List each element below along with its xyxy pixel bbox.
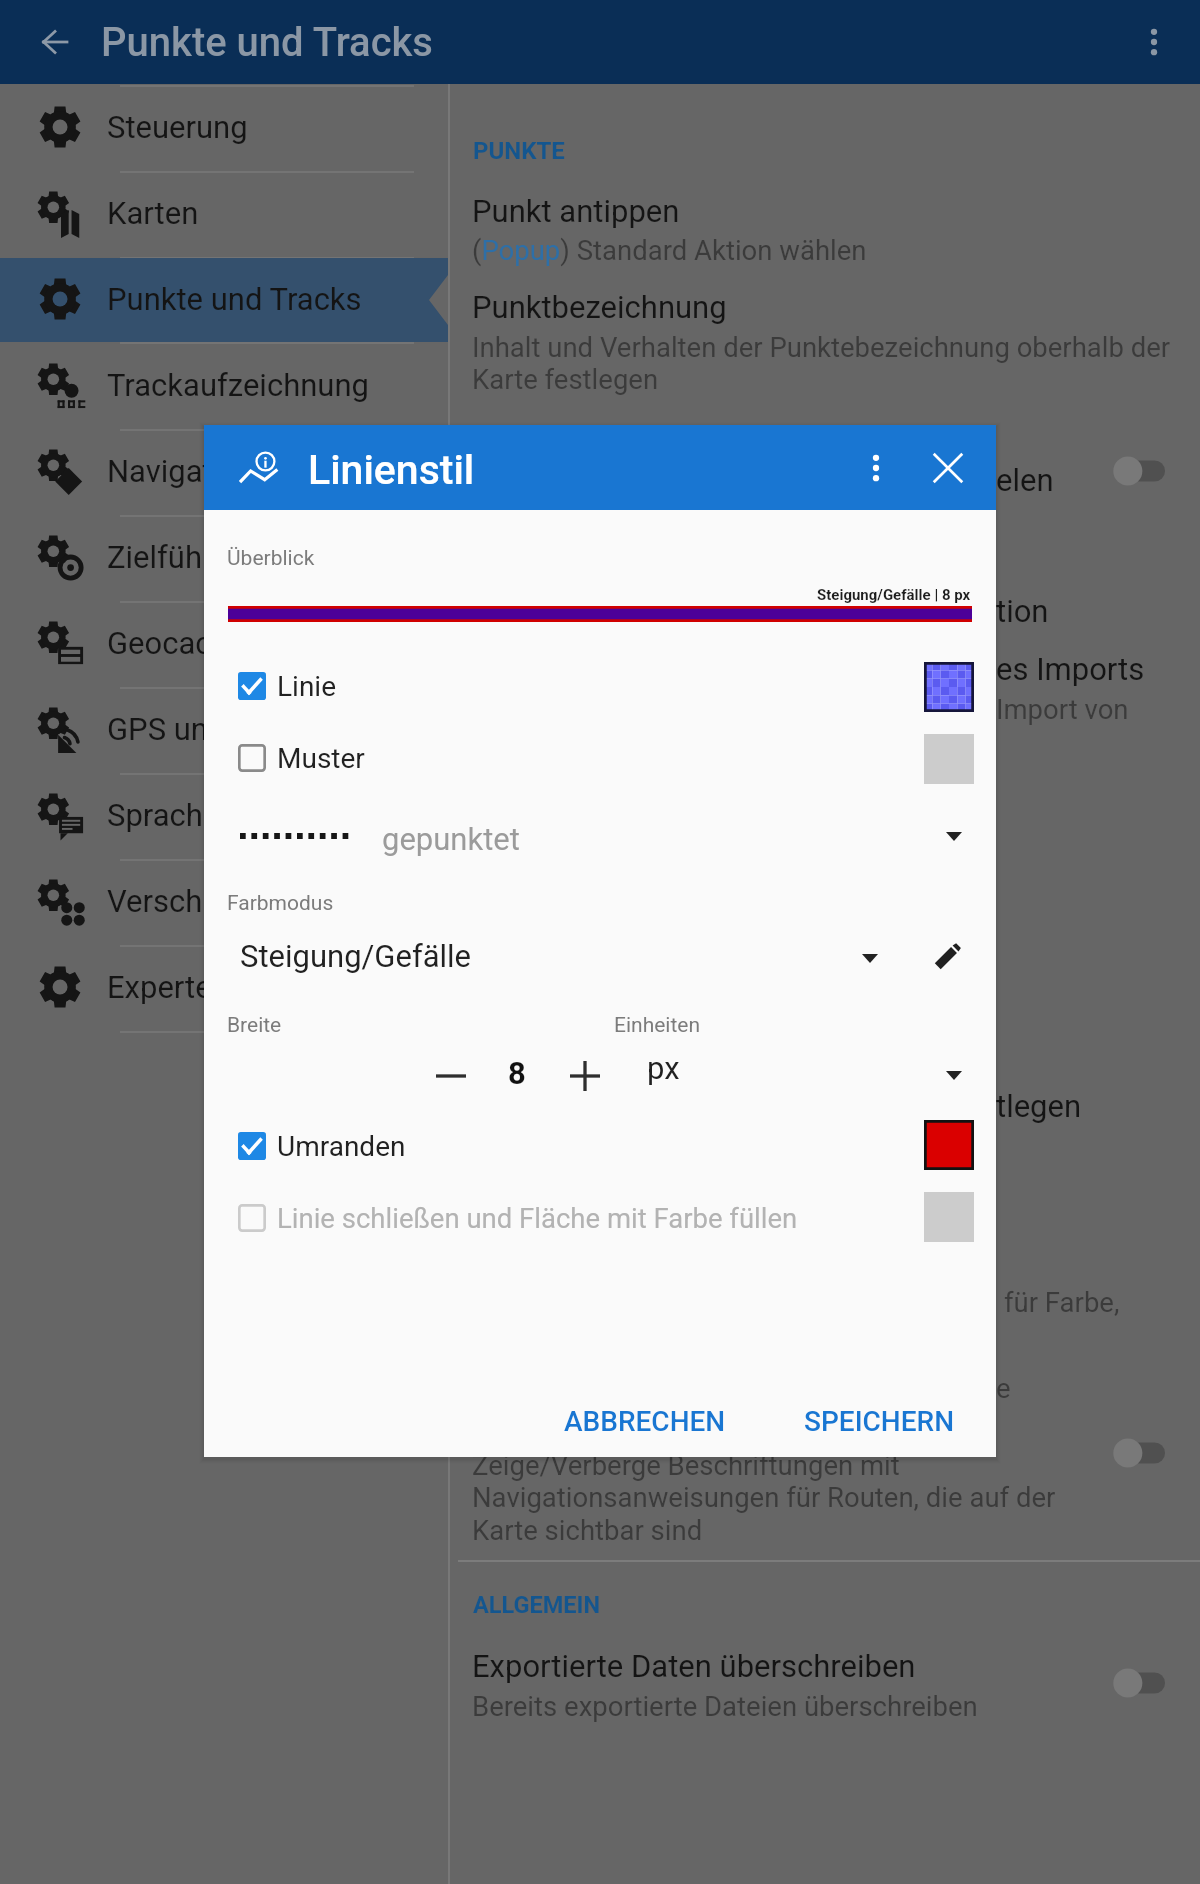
staticText: PUNKTE [473, 137, 565, 165]
staticText: Farbmodus [227, 891, 334, 916]
button[interactable]: Geocaching [0, 602, 448, 686]
staticText: Trackaufzeichnung [107, 367, 369, 403]
button[interactable]: Toggle setting [1113, 1668, 1165, 1698]
button[interactable]: Decrease width [420, 1045, 482, 1107]
button[interactable]: Open line pattern dropdown [928, 810, 980, 862]
staticText: Sprachausgabe [107, 797, 321, 833]
staticText: 8 [508, 1055, 526, 1091]
button[interactable]: Toggle setting [1113, 456, 1165, 486]
button[interactable]: Punkte und Tracks [0, 258, 448, 342]
staticText: Experteneinstellungen [107, 969, 413, 1005]
staticText: Linienstil [308, 446, 475, 494]
staticText: SPEICHERN [804, 1405, 955, 1438]
staticText: Steigung/Gefälle | 8 px [817, 586, 971, 604]
staticText: Punktbezeichnung [472, 289, 727, 325]
button[interactable]: Navigation [0, 430, 448, 514]
button[interactable]: Experteneinstellungen [0, 946, 448, 1030]
staticText: Linie schließen und Fläche mit Farbe fül… [277, 1202, 798, 1234]
staticText: (Popup) Standard Aktion wählen [472, 234, 867, 266]
staticText: Punkt antippen [472, 193, 680, 229]
button[interactable]: More options [850, 442, 902, 494]
staticText: Inhalt und Verhalten der Punktebezeichnu… [472, 331, 1171, 396]
staticText: Breite [227, 1013, 282, 1038]
button[interactable]: Linie schließen und Fläche mit Farbe fül… [238, 1190, 798, 1246]
staticText: Bereits exportierte Dateien überschreibe… [472, 1690, 978, 1722]
staticText: elen [996, 462, 1054, 498]
staticText: Karten [107, 195, 199, 231]
button[interactable]: ABBRECHEN [550, 1395, 740, 1447]
staticText: für Farbe, [1004, 1286, 1120, 1318]
button[interactable]: Open unit dropdown [928, 1049, 980, 1101]
staticText: Umranden [277, 1130, 406, 1163]
button[interactable]: Steuerung [0, 86, 448, 170]
staticText: Einheiten [614, 1013, 701, 1038]
staticText: Exportierte Daten überschreiben [472, 1648, 916, 1684]
staticText: gepunktet [382, 821, 520, 857]
button[interactable]: Karten [0, 172, 448, 256]
staticText: Zeige/Verberge Beschriftungen mit Naviga… [472, 1449, 1056, 1547]
staticText: Verschiedenes [107, 883, 310, 919]
staticText: Zielführung [107, 539, 265, 575]
staticText: px [647, 1050, 680, 1086]
staticText: Steigung/Gefälle [240, 938, 472, 974]
button[interactable]: Edit colour mode [921, 931, 973, 983]
button[interactable]: Muster [238, 730, 365, 786]
button[interactable]: Increase width [554, 1045, 616, 1107]
staticText: Muster [277, 742, 365, 775]
button[interactable]: Pick colour [924, 1120, 974, 1170]
button[interactable]: Pick line colour [924, 662, 974, 712]
staticText: Überblick [227, 546, 315, 571]
staticText: Punkte und Tracks [101, 19, 433, 66]
staticText: tlegen [996, 1088, 1082, 1124]
staticText: ALLGEMEIN [473, 1591, 600, 1619]
staticText: Steuerung [107, 109, 248, 145]
staticText: ABBRECHEN [564, 1405, 726, 1438]
staticText: tion [996, 593, 1049, 629]
staticText: Punkte und Tracks [107, 281, 362, 317]
button[interactable]: Verschiedenes [0, 860, 448, 944]
staticText: e [996, 1372, 1011, 1404]
button[interactable]: Linie [238, 658, 337, 714]
button[interactable]: Close [922, 442, 974, 494]
button[interactable]: Sprachausgabe [0, 774, 448, 858]
button[interactable]: Umranden [238, 1118, 406, 1174]
button[interactable]: SPEICHERN [790, 1395, 969, 1447]
staticText: es Imports [996, 651, 1145, 687]
staticText: Import von [996, 693, 1129, 725]
button[interactable]: Trackaufzeichnung [0, 344, 448, 428]
staticText: Linie [277, 670, 337, 703]
button[interactable]: More options [1128, 16, 1180, 68]
button[interactable]: Open colour mode dropdown [844, 932, 896, 984]
button[interactable]: Toggle setting [1113, 1438, 1165, 1468]
staticText: Navigation [107, 453, 256, 489]
staticText: Geocaching [107, 625, 271, 661]
button[interactable]: Zielführung [0, 516, 448, 600]
button[interactable]: Back [30, 18, 78, 66]
button[interactable]: GPS und Sensoren [0, 688, 448, 772]
staticText: GPS und Sensoren [107, 711, 363, 747]
